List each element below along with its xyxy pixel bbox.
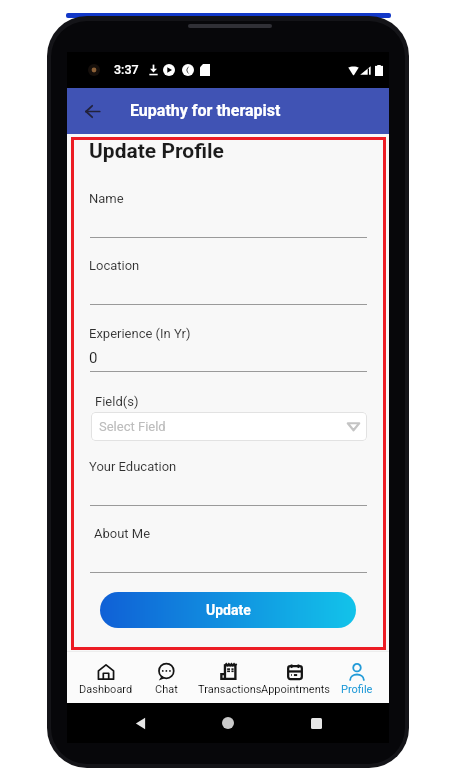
staticText: Update Profile — [89, 139, 224, 164]
staticText: Name — [89, 191, 124, 206]
button[interactable]: Dashboard — [71, 661, 141, 703]
button[interactable]: Transactions — [195, 661, 265, 703]
staticText: Transactions — [198, 683, 262, 696]
button[interactable]: Recent apps — [301, 708, 331, 738]
staticText: 3:37 — [114, 62, 139, 77]
staticText: Select Field — [99, 419, 166, 434]
button[interactable]: Profile — [322, 661, 392, 703]
button[interactable]: Back — [125, 708, 155, 738]
button[interactable]: Appointments — [260, 661, 330, 703]
staticText: Appointments — [261, 683, 330, 696]
staticText: Chat — [155, 683, 178, 696]
button[interactable]: Select Field — [91, 412, 367, 441]
staticText: Field(s) — [95, 394, 139, 409]
staticText: Profile — [341, 683, 373, 696]
staticText: 0 — [89, 349, 98, 367]
button[interactable]: Chat — [131, 661, 201, 703]
button[interactable]: Home — [213, 708, 243, 738]
button[interactable]: Update — [100, 592, 356, 628]
staticText: Eupathy for therapist — [130, 101, 281, 120]
staticText: Location — [89, 258, 140, 273]
staticText: Dashboard — [79, 683, 133, 696]
staticText: Your Education — [89, 459, 177, 474]
staticText: Update — [206, 602, 251, 618]
staticText: About Me — [94, 526, 151, 541]
staticText: Experience (In Yr) — [89, 326, 191, 341]
button[interactable]: Back — [75, 95, 107, 127]
